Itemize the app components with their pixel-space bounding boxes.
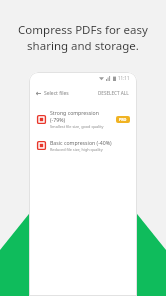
staticText: PRO	[119, 117, 127, 122]
button[interactable]: Back	[35, 89, 70, 98]
button[interactable]: DESELECT ALL	[96, 88, 131, 98]
staticText: Reduced file size, high quality	[50, 147, 103, 152]
staticText: DESELECT ALL	[98, 90, 129, 96]
staticText: Strong compression (-79%)	[50, 109, 113, 123]
button[interactable]: PRO	[116, 116, 130, 123]
staticText: Select files	[44, 90, 69, 97]
staticText: Basic compression (-40%)	[50, 139, 112, 146]
button[interactable]: Strong compression (-79%)	[29, 107, 137, 131]
staticText: Smallest file size, good quality	[50, 124, 104, 129]
staticText: 11:11	[118, 75, 130, 81]
button[interactable]: Basic compression (-40%)	[29, 137, 137, 154]
staticText: Compress PDFs for easy sharing and stora…	[0, 22, 166, 53]
other: Back	[36, 91, 41, 96]
